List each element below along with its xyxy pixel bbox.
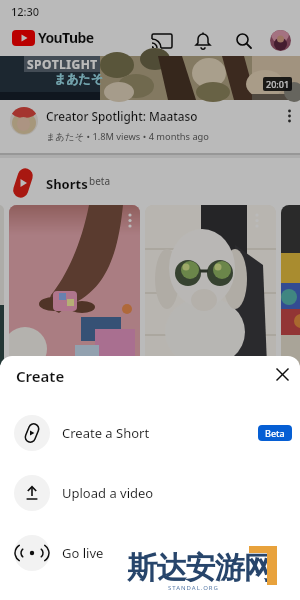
staticText: Go live bbox=[62, 544, 104, 562]
button[interactable] bbox=[231, 28, 257, 54]
staticText: Shorts bbox=[46, 175, 88, 193]
button[interactable] bbox=[281, 205, 300, 365]
staticText: 12:30 bbox=[11, 4, 40, 19]
button[interactable] bbox=[268, 360, 296, 388]
button[interactable]: Go live bbox=[0, 535, 300, 571]
button[interactable] bbox=[148, 28, 176, 56]
staticText: STANDAL.ORG bbox=[168, 584, 219, 592]
staticText: まあたそ • 1.8M views • 4 months ago bbox=[46, 130, 209, 143]
staticText: Create a Short bbox=[62, 424, 150, 442]
staticText: 斯达安游网 bbox=[128, 549, 273, 587]
button[interactable] bbox=[190, 28, 216, 54]
button[interactable]: Create a Short bbox=[0, 415, 300, 451]
button[interactable] bbox=[0, 100, 300, 154]
staticText: Creator Spotlight: Maataso bbox=[46, 108, 198, 124]
button[interactable]: SPOTLIGHT bbox=[0, 56, 300, 100]
button[interactable] bbox=[145, 205, 276, 365]
staticText: Upload a video bbox=[62, 484, 154, 502]
button[interactable] bbox=[9, 205, 140, 365]
staticText: 20:01 bbox=[266, 78, 290, 90]
staticText: まあたそ bbox=[54, 71, 104, 86]
button[interactable]: Upload a video bbox=[0, 475, 300, 511]
button[interactable]: YouTube bbox=[12, 28, 94, 47]
button[interactable] bbox=[270, 30, 291, 51]
staticText: Beta bbox=[265, 427, 285, 439]
staticText: SPOTLIGHT bbox=[27, 56, 98, 72]
staticText: Create bbox=[16, 366, 65, 386]
staticText: YouTube bbox=[38, 28, 94, 47]
staticText: beta bbox=[89, 174, 111, 188]
